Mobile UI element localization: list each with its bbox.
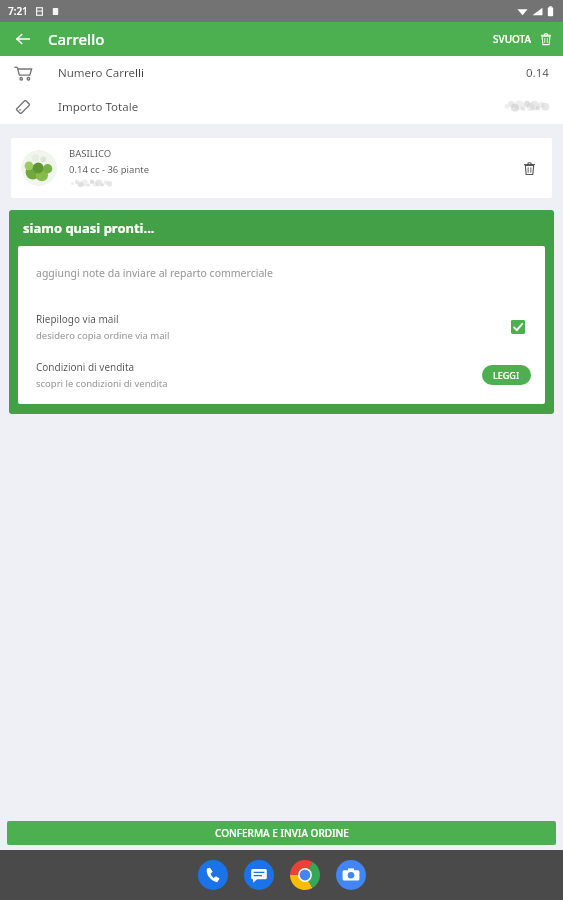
button[interactable]: Importo Totale bbox=[0, 90, 563, 124]
button[interactable]: LEGGI bbox=[482, 365, 531, 385]
button[interactable]: aggiungi note da inviare al reparto comm… bbox=[18, 246, 545, 306]
staticText: CONFERMA E INVIA ORDINE bbox=[215, 826, 349, 840]
button[interactable]: Riepilogo via mail checkbox bbox=[507, 316, 529, 338]
button[interactable]: Numero Carrelli bbox=[0, 56, 563, 90]
button[interactable]: Chrome bbox=[289, 859, 321, 891]
staticText: scopri le condizioni di vendita bbox=[36, 377, 168, 390]
button[interactable]: Back bbox=[10, 26, 36, 52]
staticText: desidero copia ordine via mail bbox=[36, 329, 170, 342]
staticText: Numero Carrelli bbox=[58, 65, 144, 81]
button[interactable]: SVUOTA bbox=[491, 30, 555, 48]
staticText: SVUOTA bbox=[493, 32, 532, 46]
button[interactable]: Riepilogo via mail bbox=[18, 306, 545, 348]
staticText: 7:21 bbox=[8, 4, 28, 18]
button[interactable]: Remove item bbox=[516, 155, 542, 181]
staticText: Importo Totale bbox=[58, 99, 139, 115]
button[interactable]: BASILICO bbox=[11, 138, 552, 198]
staticText: 0.14 cc - 36 piante bbox=[69, 163, 150, 176]
staticText: Carrello bbox=[48, 29, 105, 49]
button[interactable]: Camera bbox=[335, 859, 367, 891]
button[interactable]: CONFERMA E INVIA ORDINE bbox=[7, 821, 556, 845]
staticText: LEGGI bbox=[493, 369, 520, 381]
staticText: Condizioni di vendita bbox=[36, 360, 135, 374]
staticText: siamo quasi pronti... bbox=[23, 219, 155, 237]
staticText: aggiungi note da inviare al reparto comm… bbox=[36, 266, 273, 280]
button[interactable]: Condizioni di vendita bbox=[18, 356, 545, 404]
button[interactable]: Messages bbox=[243, 859, 275, 891]
button[interactable]: Phone bbox=[197, 859, 229, 891]
staticText: Riepilogo via mail bbox=[36, 312, 119, 326]
staticText: BASILICO bbox=[69, 147, 112, 160]
staticText: 0.14 bbox=[526, 65, 549, 81]
